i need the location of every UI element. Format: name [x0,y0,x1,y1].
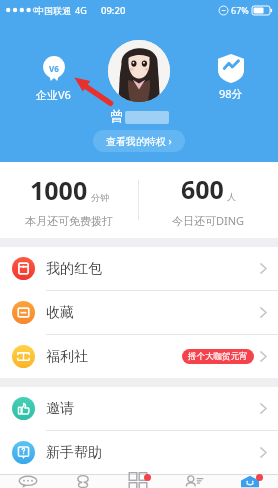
button[interactable]: 600 [139,172,278,228]
staticText: 98分 [219,86,243,101]
button[interactable]: 我的红包 [0,247,278,290]
staticText: 600 [181,172,224,206]
staticText: 查看我的特权 › [106,134,172,148]
staticText: 我的红包 [46,260,102,278]
staticText: 曾 [110,108,124,126]
staticText: 人 [227,191,236,202]
button[interactable]: DING [55,475,110,488]
staticText: 中国联通 [35,5,71,16]
staticText: 今日还可DING [172,213,245,228]
staticText: 67% [231,4,249,16]
button[interactable]: 工作 [110,475,166,488]
staticText: 分钟 [91,192,109,203]
button[interactable]: 信用分 98分 [218,54,244,83]
button[interactable]: 头像 [108,40,170,102]
staticText: 福利社 [46,348,88,366]
button[interactable]: 福利社 [0,335,278,378]
staticText: 摇个大咖贺元宵 [188,351,248,362]
button[interactable]: 1000 [0,173,138,228]
staticText: 邀请 [46,400,74,418]
button[interactable]: 联系人 [166,475,222,488]
button[interactable]: 消息 [0,475,55,488]
staticText: 4G [75,4,87,16]
button[interactable]: 查看我的特权 › [93,130,185,152]
staticText: V6 [49,63,59,74]
button[interactable]: 企业V6 等级 [41,56,67,82]
staticText: 1000 [30,173,88,207]
staticText: 收藏 [46,304,74,322]
button[interactable]: 新手帮助 [0,431,278,474]
button[interactable]: 收藏 [0,291,278,334]
staticText: 企业V6 [36,87,71,102]
staticText: 本月还可免费拨打 [25,214,113,228]
button[interactable]: 我的 [222,475,278,488]
staticText: 新手帮助 [46,444,102,462]
button[interactable]: 邀请 [0,387,278,430]
staticText: 09:20 [101,4,126,17]
